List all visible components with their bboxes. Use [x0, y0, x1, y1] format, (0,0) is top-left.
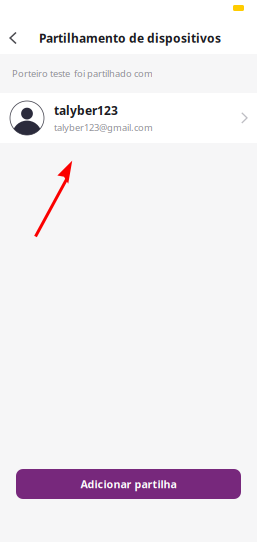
staticText: talyber123@gmail.com: [54, 121, 153, 134]
staticText: talyber123: [54, 102, 118, 118]
staticText: Partilhamento de dispositivos: [39, 30, 221, 46]
button[interactable]: talyber123: [0, 93, 257, 143]
staticText: Porteiro teste foi partilhado com: [12, 67, 153, 80]
button[interactable]: Back: [0, 22, 39, 54]
staticText: Adicionar partilha: [80, 477, 176, 491]
button[interactable]: Adicionar partilha: [16, 469, 241, 499]
